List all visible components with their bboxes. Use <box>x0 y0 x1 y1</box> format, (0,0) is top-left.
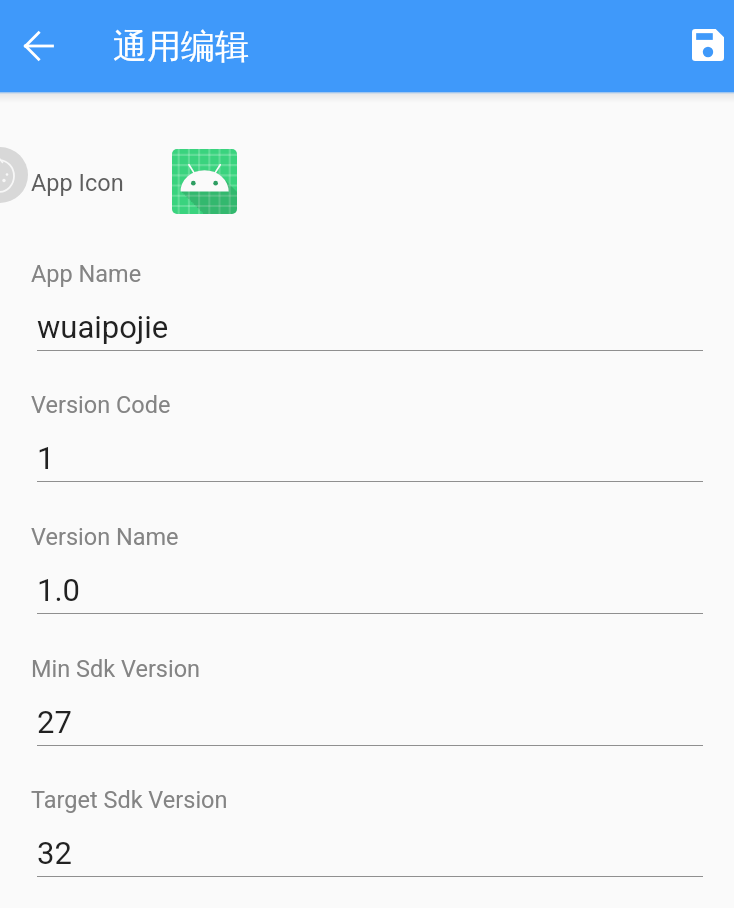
staticText: App Name <box>31 260 142 288</box>
button[interactable]: Version Name <box>0 517 734 633</box>
staticText: wuaipojie <box>37 309 169 345</box>
staticText: App Icon <box>31 169 124 197</box>
staticText: 32 <box>37 835 72 871</box>
staticText: Target Sdk Version <box>31 786 228 814</box>
button[interactable]: Target Sdk Version <box>0 780 734 896</box>
button[interactable]: Back <box>21 28 57 64</box>
staticText: Min Sdk Version <box>31 655 201 683</box>
button[interactable]: Save <box>684 21 732 69</box>
button[interactable]: App Name <box>0 254 734 370</box>
button[interactable]: Version Code <box>0 385 734 501</box>
staticText: Version Name <box>31 523 179 551</box>
staticText: Version Code <box>31 391 171 419</box>
staticText: 27 <box>37 704 72 740</box>
button[interactable]: App icon <box>172 149 237 214</box>
button[interactable]: Min Sdk Version <box>0 649 734 765</box>
staticText: 通用编辑 <box>113 25 249 68</box>
button[interactable]: App Icon <box>0 120 734 238</box>
staticText: 1 <box>37 440 55 476</box>
staticText: 1.0 <box>37 572 81 608</box>
